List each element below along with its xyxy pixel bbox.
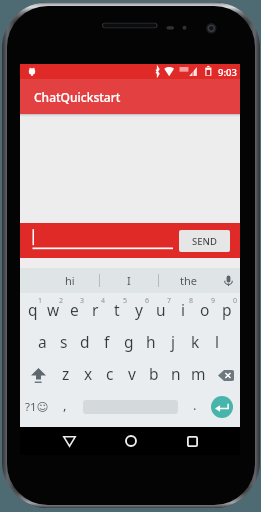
staticText: 1 [38,296,43,306]
button[interactable]: 3 [64,295,85,327]
staticText: e [70,299,79,320]
button[interactable]: 9 [194,295,216,327]
staticText: . [193,396,197,414]
staticText: z [62,363,70,384]
staticText: l [215,331,219,352]
button[interactable] [28,228,173,250]
button[interactable]: SEND [179,230,230,252]
staticText: f [104,331,110,352]
button[interactable]: c [99,359,121,391]
button[interactable]: m [187,359,209,391]
button[interactable]: d [74,327,96,359]
staticText: 7 [167,296,172,306]
staticText: r [92,299,99,320]
staticText: q [28,299,38,320]
staticText: 3 [80,296,85,306]
staticText: b [149,363,159,384]
button[interactable]: Enter [211,396,233,418]
staticText: d [80,331,90,352]
staticText: k [191,331,200,352]
staticText: ?1☺ [25,399,49,415]
button[interactable]: s [53,327,74,359]
button[interactable]: l [206,327,228,359]
button[interactable]: Backspace [209,359,240,391]
staticText: a [38,331,47,352]
button[interactable]: x [77,359,99,391]
staticText: I [127,273,131,288]
staticText: hi [65,273,75,288]
staticText: o [200,299,210,320]
staticText: 0 [233,296,238,306]
button[interactable]: hi [41,268,99,293]
staticText: m [191,363,206,384]
button[interactable]: g [118,327,140,359]
staticText: 9:03 [218,66,237,79]
staticText: u [156,299,166,320]
button[interactable]: , [53,391,77,423]
button[interactable]: ChatQuickstart [20,79,240,114]
staticText: x [84,363,93,384]
staticText: y [135,299,143,320]
staticText: 8 [189,296,194,306]
button[interactable]: k [184,327,206,359]
button[interactable]: 1 [22,295,43,327]
button[interactable]: z [55,359,77,391]
button[interactable]: Voice input [217,268,240,293]
button[interactable]: . [183,391,207,423]
button[interactable]: b [143,359,165,391]
staticText: SEND [192,235,217,248]
button[interactable]: f [96,327,118,359]
staticText: 5 [123,296,128,306]
staticText: w [47,299,60,320]
button[interactable]: 4 [85,295,106,327]
staticText: the [180,273,197,288]
staticText: 9 [211,296,216,306]
button[interactable]: 5 [106,295,128,327]
staticText: 6 [145,296,150,306]
staticText: v [128,363,136,384]
button[interactable]: Shift [20,359,55,391]
button[interactable]: Recents [179,427,205,455]
staticText: 4 [101,296,106,306]
staticText: ChatQuickstart [34,89,121,105]
button[interactable]: Home [118,427,144,455]
button[interactable]: h [140,327,162,359]
button[interactable]: 8 [172,295,194,327]
staticText: , [63,396,67,414]
staticText: i [181,299,185,320]
button[interactable]: I [100,268,158,293]
staticText: h [146,331,156,352]
staticText: j [171,331,175,352]
staticText: s [60,331,68,352]
staticText: g [124,331,134,352]
staticText: p [222,299,232,320]
button[interactable]: v [121,359,143,391]
staticText: c [106,363,114,384]
button[interactable]: the [159,268,217,293]
button[interactable]: n [165,359,187,391]
button[interactable]: a [32,327,53,359]
button[interactable]: 0 [216,295,238,327]
staticText: t [114,299,120,320]
staticText: n [171,363,181,384]
button[interactable]: j [162,327,184,359]
button[interactable]: ?1☺ [20,391,54,423]
button[interactable]: 6 [128,295,150,327]
button[interactable]: 2 [43,295,64,327]
button[interactable]: Back [56,427,82,455]
button[interactable]: 7 [150,295,172,327]
staticText: 2 [59,296,64,306]
